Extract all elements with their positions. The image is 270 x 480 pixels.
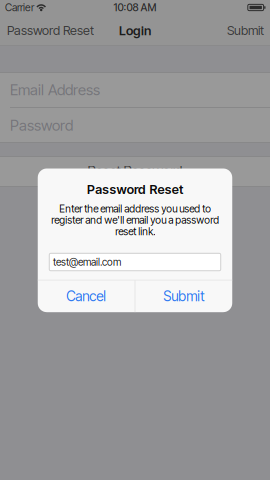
staticText: 10:08 AM (113, 1, 156, 14)
staticText: Email Address (10, 81, 100, 99)
staticText: Password Reset (87, 181, 183, 197)
staticText: Submit (163, 288, 204, 305)
staticText: Password Reset (7, 23, 94, 38)
staticText: test@email.com (53, 256, 121, 268)
button[interactable]: Password Reset (0, 15, 101, 46)
staticText: Carrier (5, 1, 34, 14)
staticText: Reset Password (87, 163, 182, 180)
button[interactable]: Cancel (38, 280, 135, 312)
staticText: Login (119, 23, 151, 38)
button[interactable]: Submit (221, 15, 270, 46)
button[interactable]: Submit (135, 280, 232, 312)
staticText: Submit (227, 23, 264, 38)
staticText: Password (10, 116, 73, 134)
staticText: Enter the email address you used to regi… (51, 203, 219, 237)
staticText: Cancel (66, 288, 106, 305)
